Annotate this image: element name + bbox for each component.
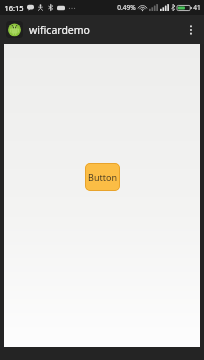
staticText: Button (88, 171, 117, 183)
staticText: 41 (193, 3, 201, 12)
button[interactable]: Button (85, 163, 120, 191)
button[interactable]: More options (178, 15, 204, 44)
staticText: 16:15 (4, 3, 24, 13)
staticText: wificardemo (29, 23, 90, 37)
staticText: 0.49% (117, 3, 136, 12)
